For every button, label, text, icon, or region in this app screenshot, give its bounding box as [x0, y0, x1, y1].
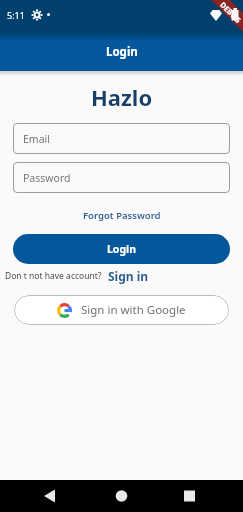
staticText: Email: [23, 132, 50, 146]
button[interactable]: [162, 480, 243, 512]
button[interactable]: Sign in: [108, 268, 149, 284]
staticText: Hazlo: [91, 82, 153, 112]
staticText: Don t not have account?: [5, 270, 102, 282]
button[interactable]: Forgot Password: [79, 205, 165, 226]
button[interactable]: [0, 480, 81, 512]
staticText: DEBUG: [218, 0, 243, 25]
button[interactable]: Email: [13, 123, 230, 154]
staticText: Sign in with Google: [81, 302, 186, 318]
staticText: Forgot Password: [83, 209, 161, 222]
staticText: Login: [107, 242, 137, 256]
button[interactable]: Password: [13, 162, 230, 193]
button[interactable]: Sign in with Google: [14, 295, 229, 325]
staticText: Sign in: [108, 268, 149, 284]
staticText: Login: [106, 44, 138, 60]
staticText: 5:11: [7, 9, 25, 21]
button[interactable]: Login: [13, 234, 230, 264]
button[interactable]: [81, 480, 162, 512]
staticText: Password: [23, 171, 71, 185]
